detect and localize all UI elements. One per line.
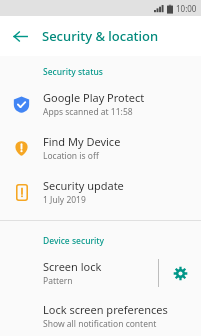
staticText: Screen lock (43, 259, 102, 274)
button[interactable]: Security update (0, 170, 201, 214)
staticText: Show all notification content (43, 318, 157, 330)
staticText: Lock screen preferences (43, 302, 168, 317)
staticText: Apps scanned at 11:58 (43, 106, 133, 118)
staticText: Security update (43, 178, 124, 193)
staticText: Find My Device (43, 134, 121, 149)
staticText: 1 July 2019 (43, 194, 86, 206)
button[interactable]: Back (6, 22, 34, 50)
staticText: Google Play Protect (43, 90, 145, 105)
button[interactable]: Google Play Protect (0, 82, 201, 126)
staticText: 10:00 (176, 3, 197, 14)
button[interactable]: Lock screen preferences (0, 295, 201, 336)
button[interactable]: Screen lock settings (159, 251, 201, 295)
staticText: Device security (43, 235, 105, 247)
button[interactable]: Find My Device (0, 126, 201, 170)
staticText: Security status (43, 66, 103, 78)
button[interactable]: Screen lock (0, 251, 158, 295)
staticText: Security & location (42, 27, 159, 45)
staticText: Pattern (43, 275, 73, 287)
staticText: Location is off (43, 150, 99, 162)
